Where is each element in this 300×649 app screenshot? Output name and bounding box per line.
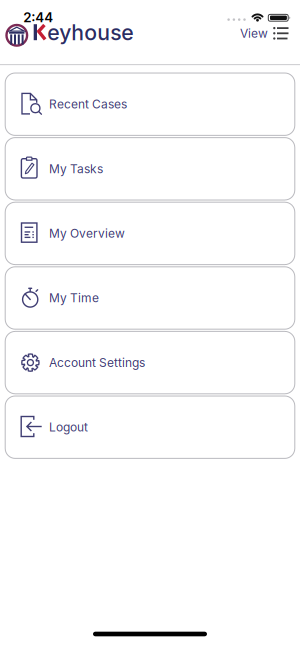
staticText: View (240, 26, 268, 41)
staticText: Logout (49, 420, 88, 434)
button[interactable]: Account Settings (5, 331, 295, 394)
button[interactable]: My Overview (5, 202, 295, 265)
button[interactable]: My Time (5, 266, 295, 330)
staticText: eyhouse (47, 20, 133, 45)
staticText: Recent Cases (49, 97, 127, 111)
button[interactable]: View options (240, 26, 289, 41)
staticText: 2:44 (23, 9, 53, 25)
button[interactable]: My Tasks (5, 137, 295, 200)
button[interactable]: Recent Cases (5, 72, 295, 136)
staticText: Account Settings (49, 355, 145, 370)
staticText: My Overview (49, 226, 125, 240)
button[interactable]: Logout (5, 395, 295, 459)
staticText: My Time (49, 291, 99, 305)
staticText: My Tasks (49, 162, 103, 176)
